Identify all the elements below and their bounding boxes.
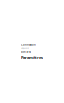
staticText: Connexion [21,43,36,46]
staticText: Wi-Fi, Bluetooth [21,47,29,49]
button[interactable]: BtnTest [21,50,31,54]
staticText: Paramètres [21,55,43,60]
staticText: BtnTest [21,50,31,54]
